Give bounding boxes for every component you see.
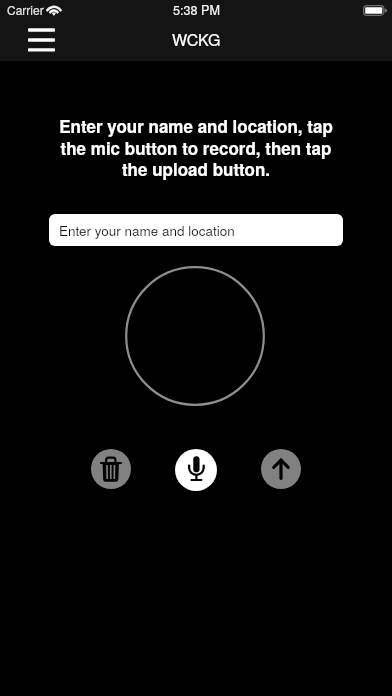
staticText: Enter your name and location [59, 221, 235, 240]
staticText: Carrier [7, 1, 44, 18]
button[interactable]: Delete recording [91, 449, 131, 489]
staticText: Enter your name and location, tap the mi… [46, 114, 346, 181]
staticText: WCKG [172, 28, 221, 51]
staticText: 5:38 PM [173, 1, 220, 19]
button[interactable]: Upload recording [261, 449, 301, 489]
button[interactable]: Enter your name and location [49, 214, 343, 246]
button[interactable]: Record with microphone [175, 449, 217, 491]
button[interactable]: Open navigation menu [16, 20, 66, 60]
